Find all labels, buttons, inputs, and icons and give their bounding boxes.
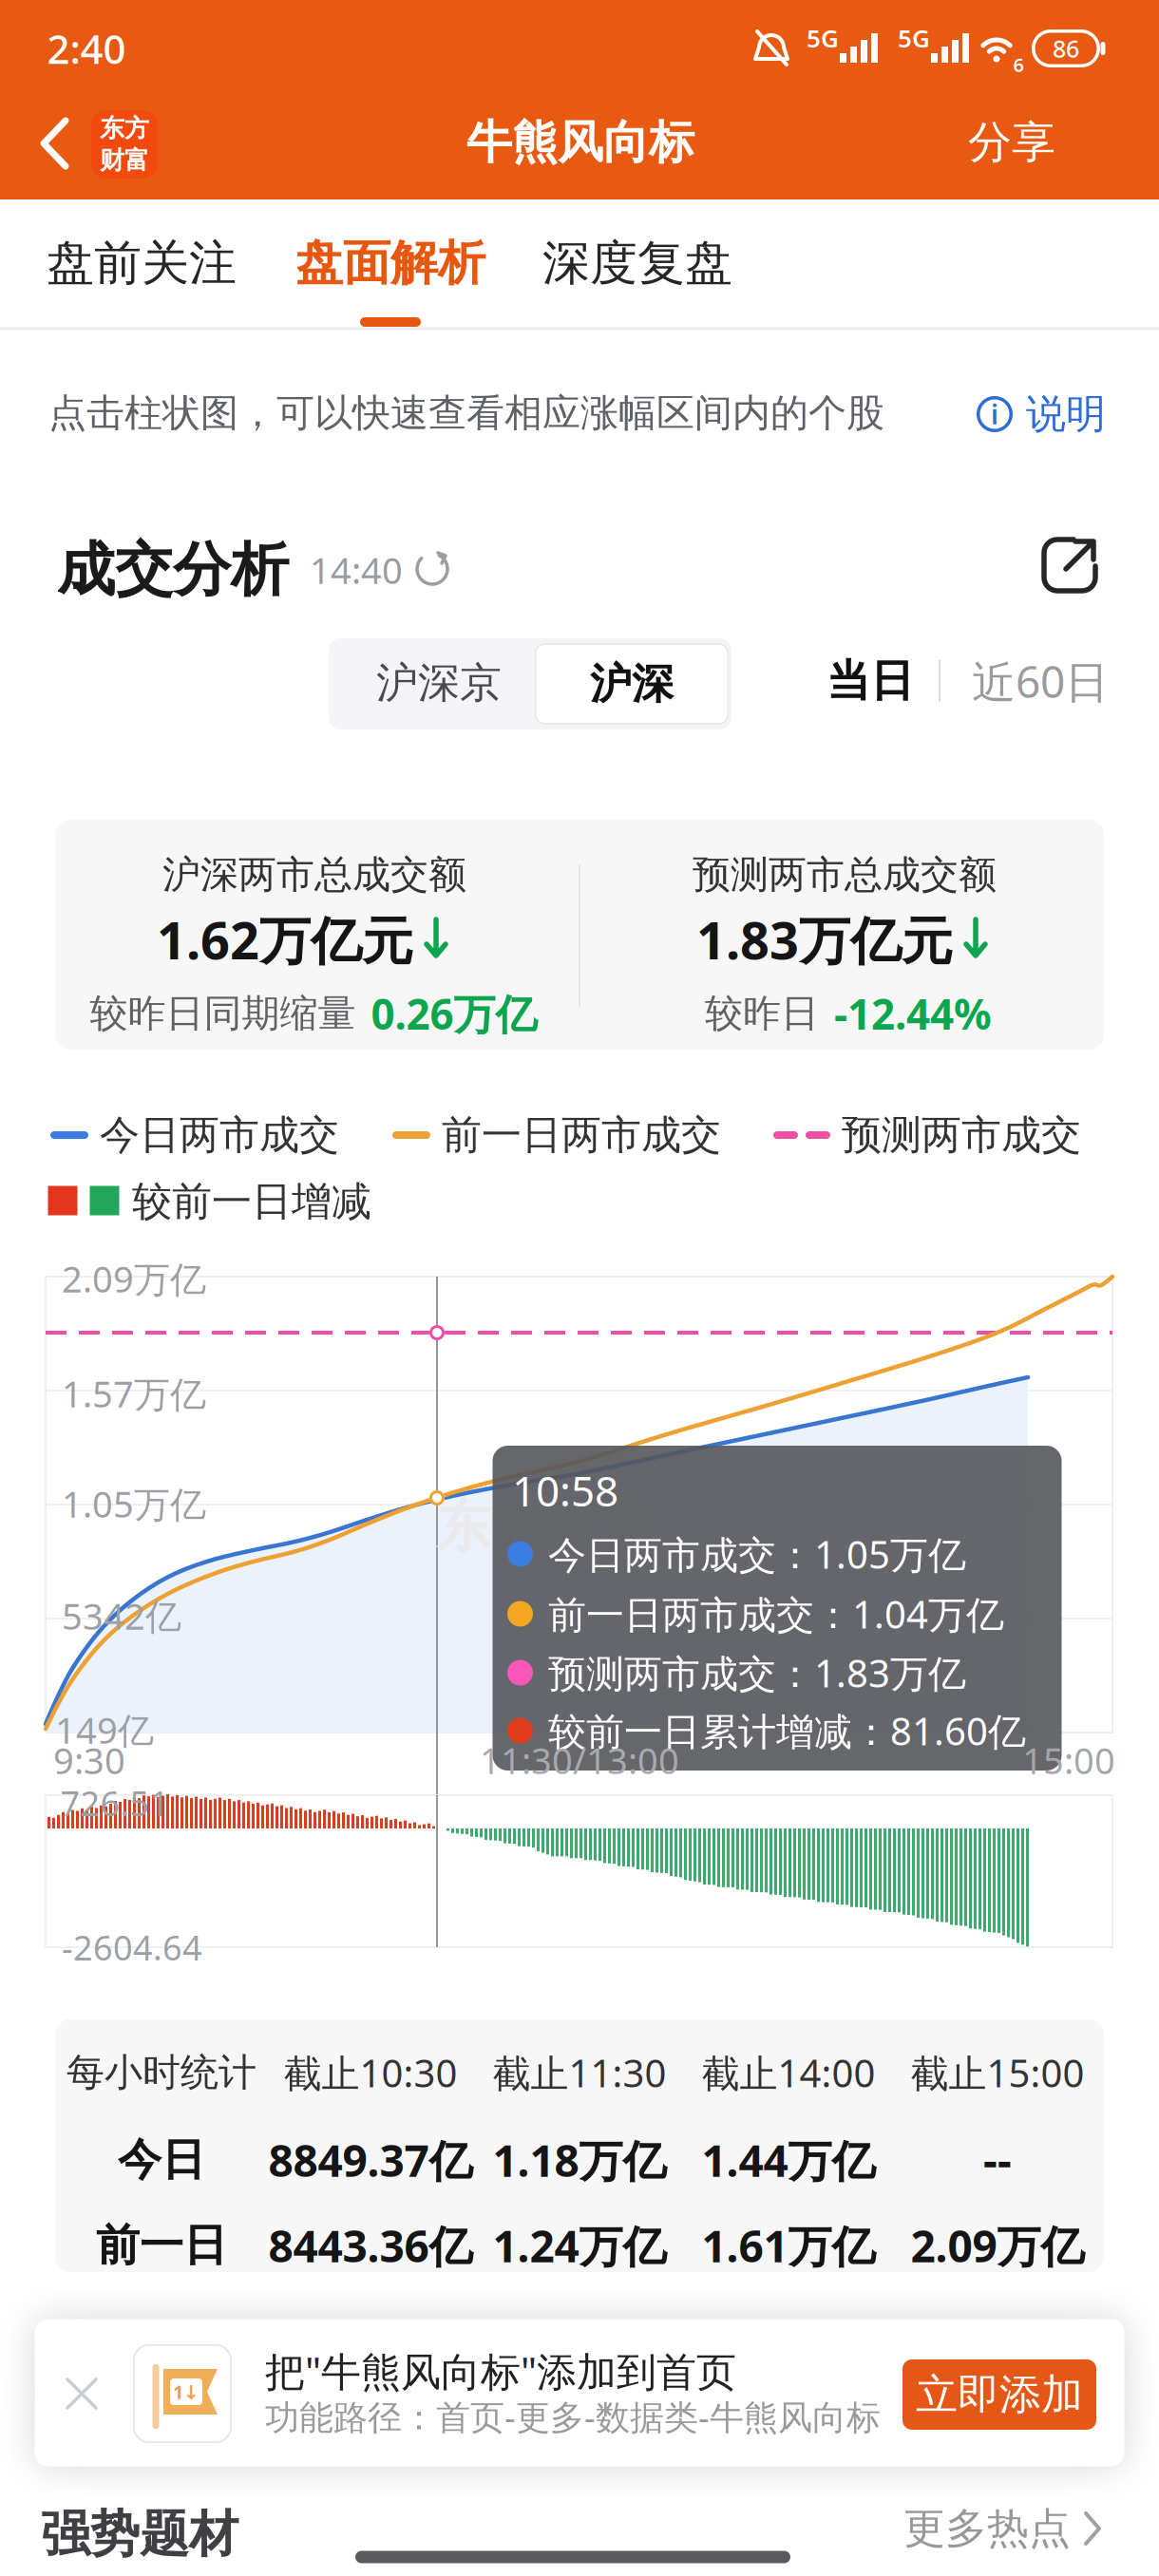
button[interactable]: 立即添加: [902, 2359, 1096, 2430]
staticText: 较前一日累计增减：81.60亿: [548, 1705, 1026, 1757]
staticText: 1.44万亿: [702, 2130, 875, 2190]
staticText: 沪深京: [376, 657, 502, 709]
button[interactable]: 更多热点: [898, 2496, 1107, 2561]
staticText: 1.05万亿: [62, 1479, 206, 1528]
staticText: 财富: [100, 145, 149, 176]
staticText: 更多热点: [903, 2502, 1071, 2555]
button[interactable]: 盘前关注: [39, 226, 244, 301]
staticText: 截止10:30: [284, 2047, 457, 2099]
staticText: 把"牛熊风向标"添加到首页: [265, 2344, 736, 2398]
staticText: 今日: [118, 2132, 205, 2187]
staticText: 1.57万亿: [62, 1369, 206, 1418]
staticText: 5G: [898, 21, 930, 55]
staticText: 强势题材: [41, 2503, 238, 2565]
staticText: 前一日: [96, 2218, 227, 2273]
staticText: 说明: [1026, 389, 1106, 439]
button[interactable]: Share chart: [1041, 537, 1102, 597]
staticText: 8849.37亿: [268, 2130, 473, 2190]
staticText: 1.24万亿: [493, 2216, 666, 2275]
staticText: 深度复盘: [542, 233, 732, 293]
staticText: 1.18万亿: [493, 2130, 666, 2190]
staticText: -2604.64: [62, 1924, 202, 1970]
staticText: 11:30/13:00: [480, 1735, 679, 1785]
staticText: 5342亿: [62, 1591, 181, 1640]
staticText: 沪深两市总成交额: [162, 851, 466, 899]
staticText: 2:40: [47, 21, 126, 76]
button[interactable]: 沪深京: [348, 638, 530, 728]
staticText: 成交分析: [57, 533, 289, 606]
staticText: 预测两市成交：1.83万亿: [548, 1647, 966, 1699]
staticText: 8443.36亿: [268, 2216, 473, 2275]
staticText: 当日: [826, 653, 914, 708]
staticText: 6: [1013, 52, 1024, 78]
staticText: 东方: [100, 113, 149, 144]
button[interactable]: 盘面解析: [288, 226, 493, 301]
staticText: 较昨日: [705, 990, 819, 1037]
staticText: 立即添加: [916, 2368, 1083, 2421]
staticText: 功能路径：首页-更多-数据类-牛熊风向标: [265, 2393, 881, 2440]
button[interactable]: Back: [43, 121, 67, 168]
staticText: 2.09万亿: [911, 2216, 1084, 2275]
staticText: 牛熊风向标: [466, 114, 694, 171]
staticText: 86: [1053, 32, 1079, 65]
staticText: 分享: [968, 115, 1055, 170]
staticText: 预测两市成交: [842, 1110, 1081, 1160]
staticText: 盘前关注: [47, 233, 237, 293]
staticText: -12.44%: [834, 985, 992, 1042]
button[interactable]: i: [971, 383, 1111, 445]
staticText: 2.09万亿: [62, 1254, 206, 1303]
staticText: 较昨日同期缩量: [90, 990, 356, 1037]
staticText: 前一日两市成交：1.04万亿: [548, 1588, 1004, 1640]
staticText: 沪深: [590, 658, 674, 710]
staticText: 1.62万亿元: [157, 904, 413, 974]
staticText: 截止15:00: [911, 2047, 1084, 2099]
staticText: 截止14:00: [702, 2047, 875, 2099]
staticText: 149亿: [55, 1705, 154, 1754]
staticText: 前一日两市成交: [442, 1110, 721, 1160]
staticText: 9:30: [53, 1735, 125, 1785]
staticText: 截止11:30: [493, 2047, 666, 2099]
staticText: 今日两市成交：1.05万亿: [548, 1528, 966, 1580]
button[interactable]: Refresh: [415, 552, 449, 586]
staticText: 1.83万亿元: [696, 904, 953, 974]
button[interactable]: Close: [58, 2370, 105, 2417]
staticText: 近60日: [972, 651, 1109, 711]
staticText: 盘面解析: [295, 233, 485, 293]
staticText: 15:00: [1022, 1735, 1115, 1785]
staticText: 点击柱状图，可以快速查看相应涨幅区间内的个股: [48, 389, 884, 437]
button[interactable]: 分享: [959, 105, 1065, 179]
staticText: 今日两市成交: [100, 1110, 339, 1160]
staticText: 1↓: [173, 2379, 199, 2405]
button[interactable]: 近60日: [966, 646, 1114, 717]
staticText: --: [983, 2130, 1012, 2190]
button[interactable]: 深度复盘: [535, 226, 740, 301]
staticText: i: [991, 396, 998, 432]
staticText: 14:40: [310, 545, 403, 595]
staticText: 0.26万亿: [371, 985, 537, 1042]
staticText: 东方财富: [436, 1493, 656, 1562]
staticText: 预测两市总成交额: [693, 851, 997, 899]
staticText: 1.61万亿: [702, 2216, 875, 2275]
staticText: 每小时统计: [66, 2049, 256, 2097]
button[interactable]: 沪深: [534, 643, 729, 725]
staticText: 较前一日增减: [132, 1176, 371, 1227]
staticText: 5G: [807, 21, 839, 55]
staticText: 726.51: [60, 1780, 170, 1826]
button[interactable]: 当日: [821, 648, 920, 714]
staticText: 10:58: [512, 1462, 618, 1519]
